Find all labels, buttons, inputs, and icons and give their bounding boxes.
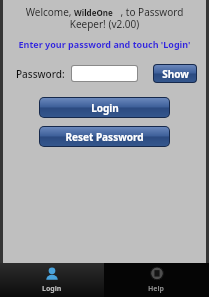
staticText: Help [148,284,165,294]
button[interactable]: Login [0,263,104,297]
staticText: Show [162,67,189,81]
button[interactable]: Help [104,263,209,297]
button[interactable]: Login [40,98,169,117]
staticText: Enter your password and touch 'Login' [3,38,206,50]
staticText: Login [42,284,62,294]
staticText: Reset Password [65,130,144,144]
button[interactable]: Reset Password [40,127,169,146]
staticText: Welcome, WildeOne , to Password Keeper! … [13,5,196,31]
staticText: Login [91,101,119,115]
staticText: Password: [16,67,65,81]
button[interactable] [72,66,137,81]
button[interactable]: Show [154,65,196,82]
